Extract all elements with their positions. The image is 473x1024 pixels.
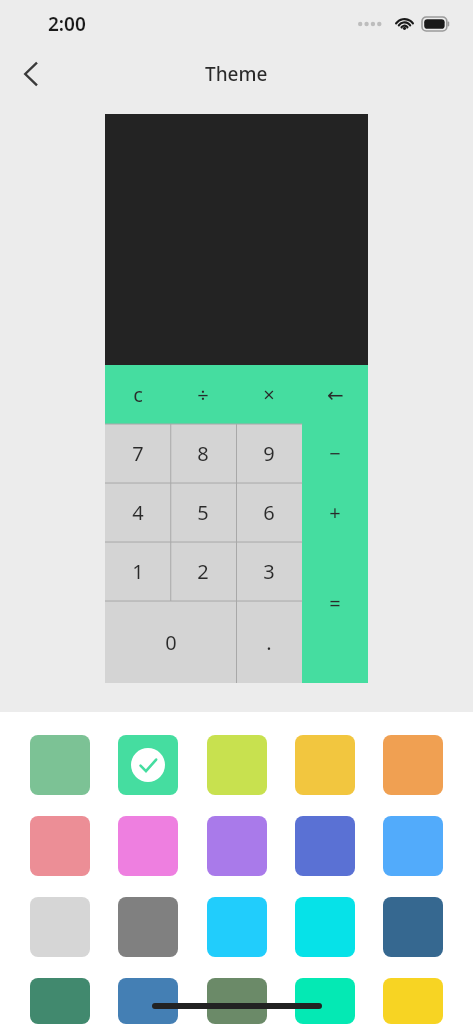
button[interactable]: Theme color — [118, 978, 178, 1024]
button[interactable]: ← — [302, 365, 368, 424]
button[interactable]: Theme color — [383, 816, 443, 876]
button[interactable]: 8 — [170, 424, 236, 483]
button[interactable]: Theme color — [383, 735, 443, 795]
button[interactable]: Theme color — [118, 816, 178, 876]
staticText: 3 — [263, 558, 275, 585]
button[interactable]: Theme color — [207, 978, 267, 1024]
button[interactable]: Theme color — [118, 735, 178, 795]
button[interactable]: Theme color — [383, 897, 443, 957]
button[interactable]: + — [302, 483, 368, 542]
button[interactable]: Theme color — [295, 735, 355, 795]
staticText: 8 — [197, 440, 209, 467]
button[interactable]: Theme color — [30, 816, 90, 876]
button[interactable]: . — [236, 601, 302, 683]
button[interactable]: Theme color — [295, 897, 355, 957]
button[interactable]: Theme color — [295, 816, 355, 876]
button[interactable]: c — [105, 365, 170, 424]
staticText: 5 — [197, 499, 209, 526]
button[interactable]: Theme color — [207, 816, 267, 876]
button[interactable]: Theme color — [383, 978, 443, 1024]
button[interactable]: Theme color — [30, 978, 90, 1024]
button[interactable]: 2 — [170, 542, 236, 601]
button[interactable]: Theme color — [207, 897, 267, 957]
button[interactable]: 0 — [105, 601, 236, 683]
staticText: 2:00 — [48, 11, 86, 37]
button[interactable]: = — [302, 542, 368, 683]
button[interactable]: 9 — [236, 424, 302, 483]
button[interactable]: Theme color — [118, 897, 178, 957]
staticText: 9 — [263, 440, 275, 467]
staticText: × — [263, 381, 275, 408]
button[interactable]: Back — [8, 51, 54, 97]
staticText: ← — [327, 383, 344, 406]
button[interactable]: Theme color — [295, 978, 355, 1024]
staticText: = — [329, 590, 341, 617]
button[interactable]: Theme color — [30, 735, 90, 795]
staticText: − — [329, 440, 341, 467]
button[interactable]: ÷ — [170, 365, 236, 424]
staticText: Theme — [205, 61, 268, 87]
staticText: 6 — [263, 499, 275, 526]
button[interactable]: 4 — [105, 483, 170, 542]
staticText: c — [133, 381, 143, 408]
button[interactable]: 6 — [236, 483, 302, 542]
staticText: + — [329, 499, 341, 526]
staticText: 4 — [132, 499, 144, 526]
button[interactable]: Theme color — [30, 897, 90, 957]
staticText: ÷ — [197, 381, 209, 408]
button[interactable]: − — [302, 424, 368, 483]
button[interactable]: Theme color — [207, 735, 267, 795]
staticText: 7 — [132, 440, 144, 467]
staticText: 0 — [165, 629, 177, 656]
staticText: . — [266, 629, 272, 656]
button[interactable]: 7 — [105, 424, 170, 483]
staticText: 1 — [132, 558, 144, 585]
button[interactable]: 1 — [105, 542, 170, 601]
button[interactable]: 5 — [170, 483, 236, 542]
staticText: 2 — [197, 558, 209, 585]
button[interactable]: 3 — [236, 542, 302, 601]
button[interactable]: × — [236, 365, 302, 424]
